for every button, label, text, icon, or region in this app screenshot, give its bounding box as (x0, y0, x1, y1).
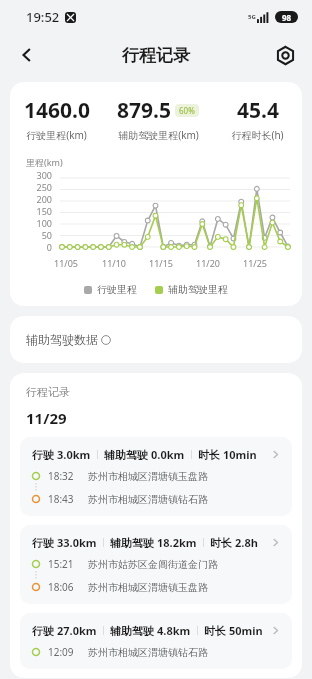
staticText: 11/25 (243, 257, 290, 269)
staticText: 苏州市姑苏区金阊街道金门路 (88, 558, 218, 571)
staticText: 1460.0 (24, 96, 90, 125)
staticText: 辅助驾驶里程(km) (118, 128, 199, 142)
staticText: 2.8h (235, 535, 258, 550)
staticText: 5G (248, 13, 256, 21)
staticText: 10min (223, 447, 257, 462)
button[interactable]: Settings (268, 38, 302, 72)
staticText: 行程记录 (26, 385, 70, 399)
staticText: 250 (36, 181, 52, 193)
staticText: 辅助驾驶里程 (168, 283, 228, 296)
staticText: 300 (36, 169, 52, 181)
staticText: 行驶 (32, 623, 57, 638)
staticText: 行驶里程 (97, 283, 137, 296)
staticText: 11/20 (196, 257, 243, 269)
staticText: 98 (282, 12, 292, 23)
staticText: 行驶 (32, 447, 57, 462)
staticText: 时长 (198, 447, 223, 462)
staticText: 辅助驾驶 (110, 535, 157, 550)
staticText: 60% (179, 105, 195, 116)
staticText: 11/05 (54, 257, 102, 269)
button[interactable]: 行驶 (20, 613, 292, 669)
staticText: 11/15 (149, 257, 196, 269)
staticText: 苏州市相城区渭塘镇钻石路 (88, 493, 208, 506)
staticText: 辅助驾驶 (104, 447, 151, 462)
button[interactable]: 辅助驾驶数据 (10, 316, 302, 363)
staticText: 里程(km) (26, 156, 63, 168)
staticText: 11/29 (26, 408, 67, 428)
staticText: 50 (41, 229, 52, 241)
staticText: 0.0km (151, 447, 185, 462)
staticText: 苏州市相城区渭塘镇玉盘路 (88, 470, 208, 483)
staticText: 200 (36, 193, 52, 205)
staticText: 辅助驾驶数据 (26, 332, 98, 347)
staticText: 18:43 (48, 492, 74, 506)
staticText: 苏州市相城区渭塘镇钻石路 (88, 646, 208, 659)
button[interactable]: Back (10, 38, 44, 72)
staticText: 879.5 (117, 96, 171, 125)
staticText: 45.4 (237, 96, 279, 125)
staticText: 行驶里程(km) (26, 128, 87, 142)
staticText: 苏州市相城区渭塘镇玉盘路 (88, 581, 208, 594)
staticText: 15:21 (48, 557, 74, 571)
staticText: 行程记录 (122, 45, 190, 66)
staticText: 150 (36, 205, 52, 217)
staticText: 3.0km (57, 447, 91, 462)
staticText: 时长 (204, 623, 229, 638)
button[interactable]: 行驶 (20, 525, 292, 604)
staticText: 50min (229, 623, 263, 638)
staticText: 11/10 (102, 257, 149, 269)
staticText: 33.0km (57, 535, 97, 550)
button[interactable]: 行驶 (20, 437, 292, 516)
staticText: 18:32 (48, 469, 74, 483)
staticText: 18:06 (48, 580, 74, 594)
staticText: 100 (36, 217, 52, 229)
staticText: 行驶 (32, 535, 57, 550)
staticText: 18.2km (157, 535, 197, 550)
staticText: 4.8km (157, 623, 191, 638)
staticText: 19:52 (26, 8, 60, 26)
staticText: 时长 (210, 535, 235, 550)
staticText: 行程时长(h) (231, 128, 284, 142)
staticText: 0 (46, 241, 52, 253)
staticText: 27.0km (57, 623, 97, 638)
staticText: 12:09 (48, 645, 74, 659)
staticText: 辅助驾驶 (110, 623, 157, 638)
